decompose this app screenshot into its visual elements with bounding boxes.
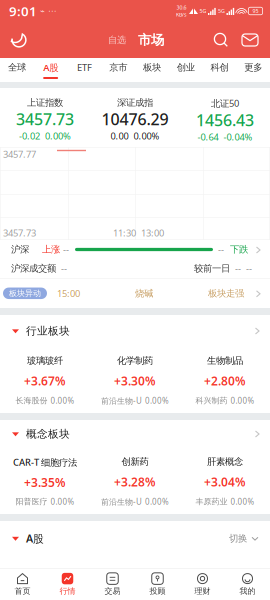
staticText: 较前一日: [194, 263, 230, 274]
staticText: --: [235, 262, 241, 275]
staticText: +2.80%: [204, 373, 246, 389]
staticText: 投顾: [149, 586, 165, 596]
staticText: 玻璃玻纤: [27, 355, 63, 366]
staticText: 95: [252, 7, 258, 15]
button[interactable]: 首页: [0, 569, 45, 600]
staticText: A股: [43, 61, 58, 74]
staticText: 烧碱: [135, 288, 153, 299]
staticText: 前沿生物-U: [101, 395, 142, 406]
staticText: 创业: [177, 62, 195, 73]
staticText: 5G: [218, 7, 225, 15]
button[interactable]: A股: [34, 58, 68, 82]
button[interactable]: 夜间模式: [5, 26, 33, 54]
staticText: 11:30: [113, 227, 136, 239]
staticText: +3.35%: [24, 474, 66, 490]
staticText: 上涨: [42, 244, 60, 255]
button[interactable]: 沪深: [0, 240, 270, 259]
staticText: CAR-T 细胞疗法: [13, 456, 77, 468]
staticText: 自选: [108, 34, 126, 46]
staticText: 行情: [59, 586, 75, 596]
staticText: 北证50: [211, 97, 239, 109]
staticText: 0.00%: [145, 496, 169, 507]
staticText: 科创: [210, 62, 228, 73]
button[interactable]: 行业板块: [0, 315, 270, 347]
button[interactable]: 理财: [180, 569, 225, 600]
button[interactable]: 自选: [104, 31, 130, 49]
staticText: 理财: [194, 586, 210, 596]
staticText: 更多: [244, 62, 262, 73]
staticText: +3.30%: [114, 373, 156, 389]
staticText: 10476.29: [101, 108, 168, 130]
button[interactable]: 更多: [236, 58, 270, 82]
button[interactable]: 科创: [202, 58, 236, 82]
button[interactable]: 玻璃玻纤: [0, 347, 90, 413]
staticText: -0.02: [19, 130, 40, 142]
staticText: 长海股份: [15, 396, 47, 406]
button[interactable]: 上证指数: [0, 88, 90, 147]
staticText: 沪深成交额: [11, 263, 56, 274]
button[interactable]: CAR-T 细胞疗法: [0, 448, 90, 514]
button[interactable]: 市场: [136, 30, 166, 50]
staticText: 13:00: [141, 227, 164, 239]
staticText: +3.28%: [114, 474, 156, 490]
staticText: 0.00%: [145, 395, 169, 406]
staticText: 交易: [104, 586, 120, 596]
staticText: 首页: [14, 586, 30, 596]
button[interactable]: 创新药: [90, 448, 180, 514]
staticText: -0.04%: [223, 131, 252, 143]
button[interactable]: 交易: [90, 569, 135, 600]
button[interactable]: 创业: [169, 58, 203, 82]
button[interactable]: 深证成指: [90, 88, 180, 147]
staticText: 深证成指: [117, 97, 153, 108]
staticText: 5G: [199, 7, 206, 15]
staticText: 3457.77: [3, 148, 36, 160]
staticText: KB/s: [176, 11, 187, 18]
button[interactable]: 板块异动: [0, 279, 270, 308]
button[interactable]: 肝素概念: [180, 448, 270, 514]
button[interactable]: A股: [0, 521, 270, 556]
staticText: ⌁ ⋯: [40, 6, 56, 16]
staticText: 上证指数: [27, 97, 63, 108]
staticText: 科兴制药: [195, 396, 227, 406]
staticText: 1456.43: [196, 109, 254, 131]
staticText: 行业板块: [26, 324, 70, 337]
staticText: 板块走强: [208, 288, 244, 299]
button[interactable]: ETF: [67, 58, 101, 82]
staticText: 0.00%: [230, 395, 254, 406]
button[interactable]: 生物制品: [180, 347, 270, 413]
staticText: 阳普医疗: [15, 497, 47, 507]
staticText: 0.00: [110, 130, 128, 142]
staticText: 0.00%: [45, 130, 71, 142]
staticText: 0.00%: [133, 130, 159, 142]
staticText: +3.04%: [204, 474, 246, 490]
staticText: 概念板块: [26, 427, 70, 440]
button[interactable]: 投顾: [135, 569, 180, 600]
button[interactable]: 化学制药: [90, 347, 180, 413]
staticText: 0.00%: [50, 496, 74, 507]
staticText: 3457.73: [16, 108, 74, 130]
staticText: 生物制品: [207, 355, 243, 366]
staticText: 市场: [138, 32, 164, 48]
button[interactable]: 行情: [45, 569, 90, 600]
staticText: --: [246, 262, 252, 275]
staticText: 前沿生物-U: [101, 496, 142, 507]
staticText: 9:01: [9, 2, 37, 20]
button[interactable]: 京市: [101, 58, 135, 82]
staticText: 3457.73: [3, 227, 36, 239]
staticText: 0.00%: [50, 395, 74, 406]
staticText: 肝素概念: [207, 456, 243, 467]
staticText: 下跌: [230, 244, 248, 255]
staticText: 切换: [229, 533, 247, 544]
staticText: ETF: [77, 61, 92, 74]
button[interactable]: 消息: [237, 27, 263, 53]
staticText: --: [218, 243, 224, 256]
button[interactable]: 北证50: [180, 88, 270, 147]
button[interactable]: 板块: [135, 58, 169, 82]
button[interactable]: 概念板块: [0, 420, 270, 448]
button[interactable]: 全球: [0, 58, 34, 82]
button[interactable]: 我的: [225, 569, 270, 600]
staticText: 板块: [143, 62, 161, 73]
staticText: --: [63, 243, 69, 256]
staticText: 化学制药: [117, 355, 153, 366]
button[interactable]: 搜索: [208, 27, 234, 53]
